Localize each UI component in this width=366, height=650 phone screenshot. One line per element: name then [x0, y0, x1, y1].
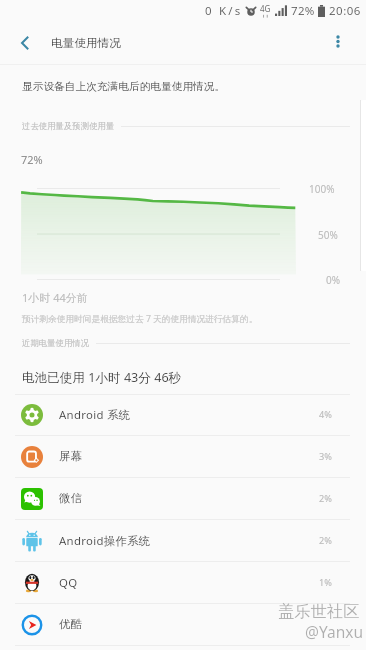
staticText: 预计剩余使用时间是根据您过去 7 天的使用情况进行估算的。	[22, 313, 258, 325]
staticText: 50%	[318, 228, 338, 242]
button[interactable]: QQ	[0, 562, 366, 604]
staticText: 近期电量使用情况	[22, 338, 90, 349]
staticText: 1小时 44分前	[22, 290, 88, 305]
staticText: 3%	[319, 450, 332, 463]
staticText: 电池已使用 1小时 43分 46秒	[22, 369, 182, 386]
staticText: 0%	[326, 273, 341, 287]
staticText: 过去使用量及预测使用量	[22, 121, 115, 132]
staticText: 屏幕	[59, 449, 83, 463]
staticText: 4G	[260, 3, 271, 14]
staticText: 72%	[291, 3, 315, 19]
button[interactable]: 屏幕	[0, 436, 366, 478]
staticText: Android 系统	[59, 407, 131, 423]
staticText: 2%	[319, 492, 332, 505]
button[interactable]: More options	[324, 28, 351, 55]
staticText: Android操作系统	[59, 533, 151, 549]
staticText: 4%	[319, 408, 332, 421]
staticText: 0 K/s	[205, 3, 243, 19]
staticText: 1%	[319, 576, 332, 589]
staticText: 微信	[59, 491, 83, 505]
staticText: 20:06	[329, 3, 361, 19]
button[interactable]: 优酷	[0, 604, 366, 646]
staticText: 2%	[319, 534, 332, 547]
staticText: 电量使用情况	[51, 36, 122, 50]
staticText: @Yanxu	[305, 621, 363, 642]
staticText: 72%	[21, 152, 43, 167]
staticText: 显示设备自上次充满电后的电量使用情况。	[22, 80, 226, 93]
button[interactable]: Android 系统	[0, 394, 366, 436]
staticText: 优酷	[59, 617, 83, 631]
button[interactable]: 微信	[0, 478, 366, 520]
button[interactable]: Back	[8, 26, 42, 60]
staticText: 盖乐世社区	[278, 601, 360, 622]
staticText: 100%	[309, 182, 335, 196]
button[interactable]: Android操作系统	[0, 520, 366, 562]
staticText: QQ	[59, 575, 78, 591]
